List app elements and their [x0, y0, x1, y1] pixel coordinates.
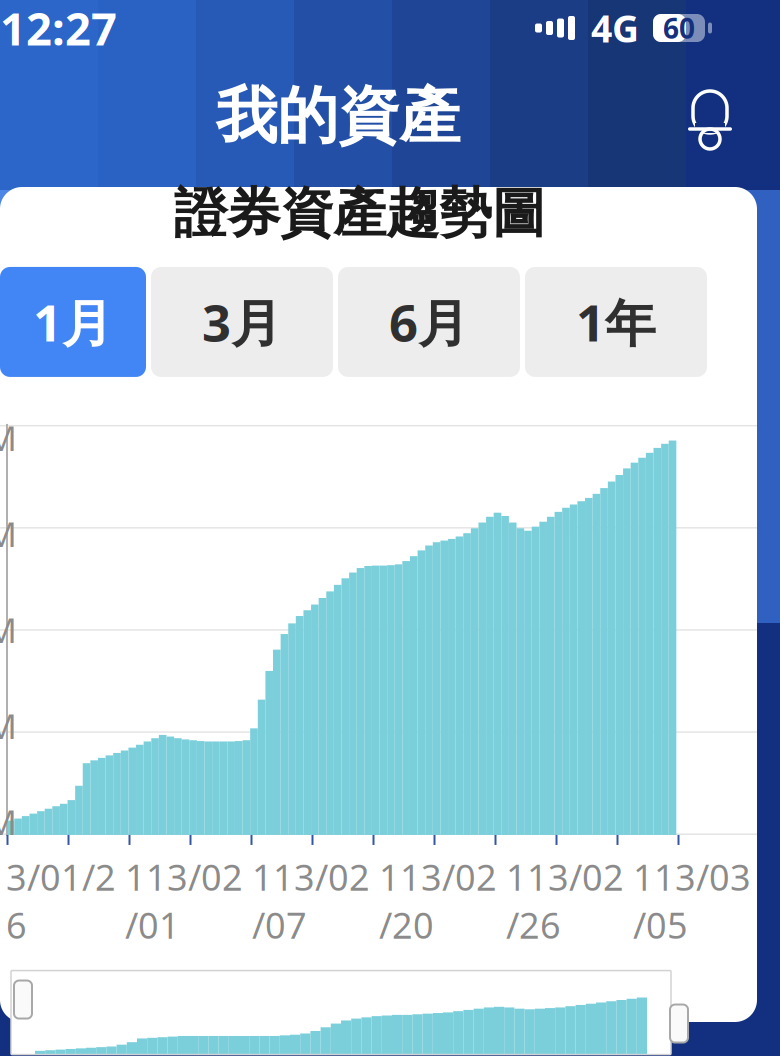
- staticText: 12:27: [0, 0, 117, 58]
- staticText: 6月: [389, 288, 469, 356]
- button[interactable]: Notifications: [678, 80, 742, 152]
- staticText: 60: [663, 9, 695, 47]
- staticText: 證券資產趨勢圖: [174, 180, 545, 246]
- button[interactable]: 1年: [525, 267, 707, 377]
- staticText: 113/02/20: [379, 853, 497, 948]
- staticText: M: [0, 703, 16, 749]
- staticText: 3月: [202, 288, 282, 356]
- button[interactable]: 6月: [338, 267, 520, 377]
- staticText: 113/03/05: [633, 853, 751, 948]
- staticText: 113/02/26: [506, 853, 624, 948]
- staticText: M: [0, 511, 16, 557]
- staticText: 3/01/26: [6, 853, 116, 948]
- staticText: 1月: [33, 288, 113, 356]
- staticText: M: [0, 607, 16, 653]
- staticText: 1年: [576, 288, 656, 356]
- staticText: 我的資產: [216, 78, 460, 154]
- staticText: 113/02/07: [252, 853, 370, 948]
- button[interactable]: 3月: [151, 267, 333, 377]
- staticText: 4G: [591, 3, 639, 53]
- staticText: 113/02/01: [125, 853, 243, 948]
- button[interactable]: 1月: [0, 267, 146, 377]
- staticText: M: [0, 415, 16, 461]
- staticText: M: [0, 799, 16, 845]
